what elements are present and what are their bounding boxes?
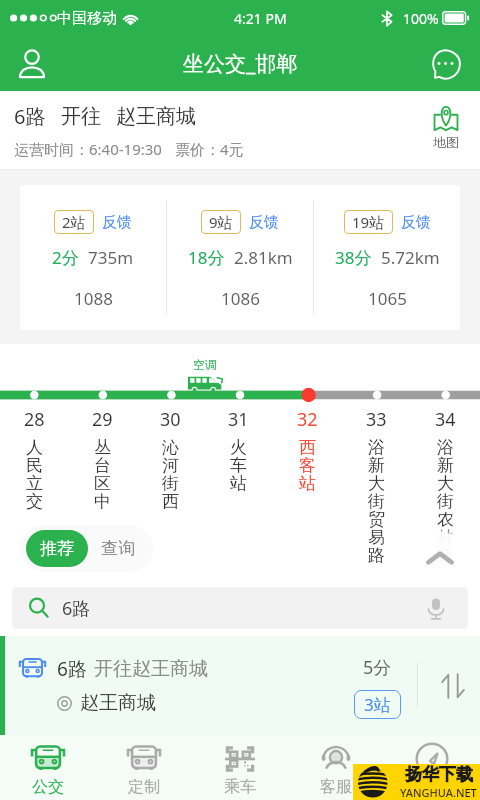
staticText: 33	[366, 407, 387, 432]
staticText: 100%	[403, 9, 439, 28]
staticText: 3站	[364, 693, 391, 716]
staticText: 坐公交_邯郸	[183, 49, 298, 78]
button[interactable]: 33	[342, 407, 411, 566]
staticText: 38分	[335, 246, 372, 269]
button[interactable]: 客服	[288, 735, 384, 800]
staticText: 4:21 PM	[234, 9, 287, 28]
staticText: 6路	[14, 103, 46, 130]
button[interactable]: 定制	[96, 735, 192, 800]
staticText: 29	[92, 407, 113, 432]
button[interactable]: 我的	[384, 735, 480, 800]
staticText: 30	[160, 407, 181, 432]
button[interactable]: 公交	[0, 735, 96, 800]
staticText: 5.72km	[381, 246, 440, 269]
staticText: 公交	[32, 777, 64, 797]
staticText: 扬华下载	[405, 764, 473, 785]
staticText: 票价：4元	[175, 139, 244, 159]
staticText: 34	[435, 407, 456, 432]
button[interactable]: 推荐	[26, 530, 88, 567]
staticText: 运营时间：6:40-19:30	[14, 139, 162, 159]
staticText: 浴 新 大 街 农 林 路	[437, 437, 454, 566]
staticText: 6路	[57, 656, 87, 682]
button[interactable]: 29	[68, 407, 136, 512]
staticText: 赵王商城	[116, 104, 196, 129]
staticText: 中国移动	[57, 9, 117, 28]
staticText: 地图	[433, 134, 459, 150]
staticText: 6路	[62, 596, 91, 621]
button[interactable]: 30	[136, 407, 204, 512]
button[interactable]: 9站	[167, 185, 313, 330]
staticText: 1086	[221, 287, 260, 310]
staticText: 735m	[88, 246, 134, 269]
button[interactable]: 2站	[20, 185, 166, 330]
staticText: 2站	[62, 212, 86, 232]
button[interactable]: 乘车	[192, 735, 288, 800]
staticText: 空调	[193, 357, 217, 372]
button[interactable]: 地图	[432, 105, 460, 150]
button[interactable]: 31	[204, 407, 273, 494]
staticText: 推荐	[40, 538, 74, 559]
staticText: 反馈	[401, 213, 431, 232]
staticText: 浴 新 大 街 贸 易 路	[368, 437, 385, 566]
staticText: 开往	[61, 104, 101, 129]
staticText: 19站	[352, 212, 385, 232]
staticText: 反馈	[249, 213, 279, 232]
staticText: 1065	[368, 287, 407, 310]
button[interactable]: Messages	[422, 41, 468, 87]
staticText: 31	[228, 407, 249, 432]
staticText: 5分	[363, 655, 392, 680]
button[interactable]: 查询	[88, 530, 148, 567]
staticText: 火 车 站	[230, 437, 247, 494]
staticText: 人 民 立 交	[26, 437, 43, 512]
staticText: 客服	[320, 777, 352, 797]
staticText: 丛 台 区 中	[94, 437, 111, 512]
button[interactable]: Swap direction	[440, 672, 466, 700]
staticText: 沁 河 街 西	[162, 437, 179, 512]
button[interactable]: 34	[411, 407, 480, 566]
staticText: 2分	[52, 246, 79, 269]
staticText: 我的	[416, 777, 448, 797]
staticText: 1088	[74, 287, 113, 310]
button[interactable]: 6路	[0, 636, 480, 735]
button[interactable]: Voice search	[427, 597, 445, 620]
staticText: 18分	[188, 246, 225, 269]
button[interactable]: 19站	[314, 185, 460, 330]
button[interactable]: 28	[0, 407, 68, 512]
staticText: 2.81km	[234, 246, 293, 269]
staticText: 定制	[128, 777, 160, 797]
staticText: 开往赵王商城	[94, 657, 208, 681]
staticText: 乘车	[224, 777, 256, 797]
button[interactable]: 6路	[12, 587, 468, 629]
staticText: 反馈	[102, 213, 132, 232]
button[interactable]: Scroll to top	[410, 527, 470, 587]
staticText: 查询	[101, 538, 135, 559]
staticText: 9站	[209, 212, 233, 232]
staticText: YANGHUA.NET	[400, 785, 477, 800]
staticText: 32	[297, 407, 318, 432]
button[interactable]: Profile	[8, 40, 56, 88]
staticText: 西 客 站	[299, 437, 316, 494]
button[interactable]: 32	[273, 407, 342, 494]
staticText: 28	[24, 407, 45, 432]
staticText: 赵王商城	[80, 691, 156, 715]
